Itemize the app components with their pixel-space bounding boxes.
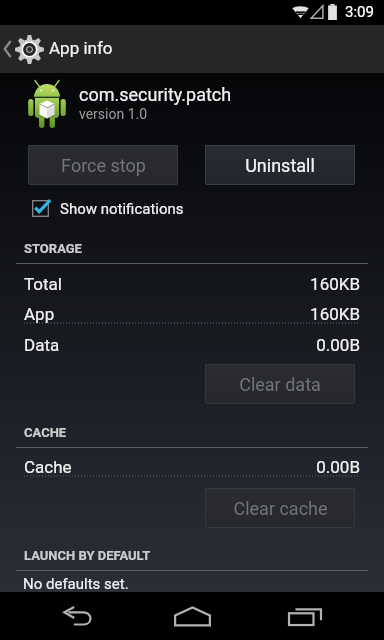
staticText: 3:09 bbox=[345, 3, 374, 21]
staticText: Force stop bbox=[61, 155, 146, 176]
staticText: Uninstall bbox=[245, 155, 315, 176]
button[interactable]: Navigate up bbox=[0, 25, 50, 73]
staticText: CACHE bbox=[24, 425, 67, 440]
staticText: 160KB bbox=[260, 304, 360, 324]
staticText: App bbox=[24, 304, 55, 324]
staticText: Total bbox=[24, 274, 62, 294]
staticText: No defaults set. bbox=[23, 575, 129, 593]
staticText: com.security.patch bbox=[79, 84, 232, 105]
button[interactable]: Recent apps bbox=[260, 592, 350, 640]
staticText: 0.00B bbox=[260, 335, 360, 355]
button[interactable]: Force stop bbox=[28, 145, 178, 185]
button[interactable]: App bbox=[0, 304, 384, 330]
staticText: App info bbox=[49, 38, 113, 58]
staticText: LAUNCH BY DEFAULT bbox=[24, 548, 151, 563]
button[interactable]: Total bbox=[0, 274, 384, 300]
staticText: 160KB bbox=[260, 274, 360, 294]
staticText: Cache bbox=[24, 457, 72, 477]
button[interactable]: Data bbox=[0, 335, 384, 361]
staticText: Show notifications bbox=[60, 200, 184, 218]
button[interactable]: Clear data bbox=[205, 364, 355, 404]
button[interactable]: Uninstall bbox=[205, 145, 355, 185]
button[interactable]: Home bbox=[147, 592, 237, 640]
button[interactable]: Show notifications bbox=[24, 196, 184, 222]
staticText: Clear data bbox=[239, 374, 321, 395]
button[interactable]: Cache bbox=[0, 457, 384, 483]
button[interactable]: Clear cache bbox=[205, 488, 355, 528]
button[interactable]: Back bbox=[34, 592, 124, 640]
staticText: 0.00B bbox=[260, 457, 360, 477]
staticText: Data bbox=[24, 335, 60, 355]
staticText: Clear cache bbox=[233, 498, 328, 519]
staticText: version 1.0 bbox=[79, 106, 148, 122]
staticText: STORAGE bbox=[24, 241, 82, 256]
